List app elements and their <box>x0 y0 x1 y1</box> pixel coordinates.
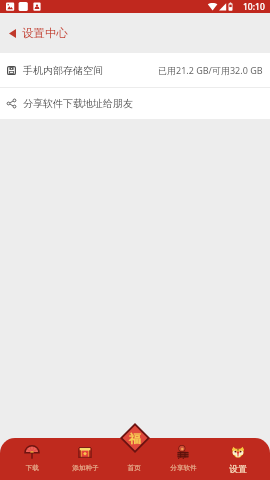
staticText: 添加种子 <box>72 464 99 472</box>
staticText: 已用21.2 GB/可用32.0 GB <box>158 64 263 76</box>
button[interactable]: 设置 <box>205 438 270 480</box>
button[interactable]: 手机内部存储空间 <box>0 53 270 87</box>
staticText: 10:10 <box>243 1 265 13</box>
staticText: 手机内部存储空间 <box>23 64 103 77</box>
button[interactable]: 添加种子 <box>63 438 107 480</box>
staticText: 首页 <box>127 464 141 472</box>
staticText: 设置中心 <box>22 26 68 40</box>
staticText: 设置 <box>229 464 247 475</box>
button[interactable]: 设置中心 <box>0 13 270 53</box>
button[interactable]: 首页 <box>120 423 150 453</box>
staticText: 下载 <box>25 464 39 472</box>
button[interactable]: 分享软件下载地址给朋友 <box>0 88 270 119</box>
staticText: 分享软件 <box>170 464 197 472</box>
button[interactable]: 下载 <box>0 438 63 480</box>
button[interactable]: 分享软件 <box>161 438 205 480</box>
staticText: 福 <box>129 431 141 446</box>
button[interactable]: 首页 <box>107 438 161 480</box>
staticText: 分享软件下载地址给朋友 <box>23 97 133 110</box>
